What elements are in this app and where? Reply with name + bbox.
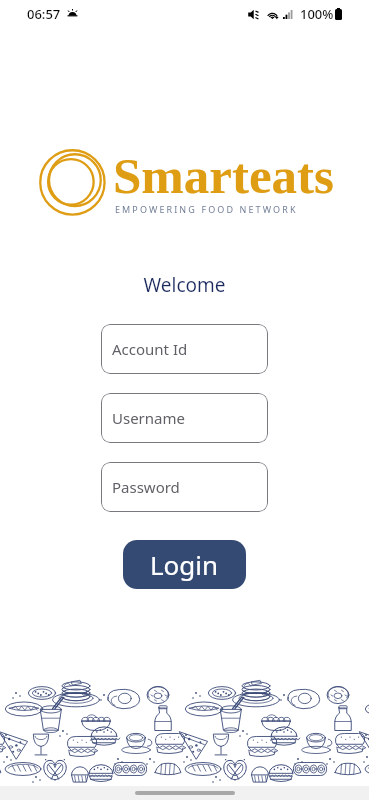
staticText: Welcome — [0, 272, 369, 298]
button[interactable]: Password — [101, 462, 268, 512]
staticText: Username — [112, 408, 185, 428]
staticText: 100% — [300, 5, 334, 23]
staticText: Password — [112, 477, 180, 497]
staticText: Account Id — [112, 339, 188, 359]
staticText: 06:57 — [27, 5, 61, 23]
staticText: Login — [150, 547, 219, 582]
button[interactable]: Username — [101, 393, 268, 443]
staticText: EMPOWERING FOOD NETWORK — [115, 203, 298, 215]
button[interactable]: Account Id — [101, 324, 268, 374]
button[interactable]: Login — [123, 540, 246, 589]
staticText: Smarteats — [113, 148, 334, 204]
